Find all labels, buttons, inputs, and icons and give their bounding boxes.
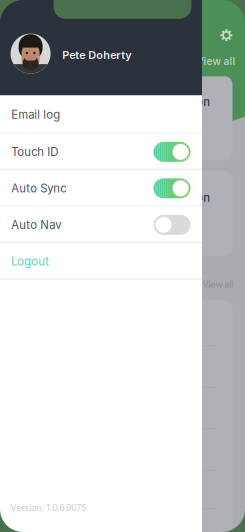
- staticText: Location: [163, 95, 210, 109]
- button[interactable]: Logout: [0, 243, 202, 280]
- staticText: View all: [202, 279, 233, 290]
- staticText: Logout: [11, 254, 49, 268]
- staticText: Touch ID: [11, 145, 58, 159]
- button[interactable]: Settings: [215, 24, 237, 46]
- staticText: Auto Nav: [11, 218, 61, 232]
- staticText: Pete Doherty: [62, 48, 131, 62]
- button[interactable]: Touch ID: [0, 134, 202, 170]
- button[interactable]: Pete Doherty: [0, 0, 202, 95]
- button[interactable]: View all: [0, 279, 233, 290]
- staticText: Location: [163, 191, 210, 204]
- button[interactable]: View all: [0, 55, 235, 67]
- button[interactable]: Email log: [0, 95, 202, 134]
- button[interactable]: Auto Nav: [0, 207, 202, 243]
- staticText: Email log: [11, 108, 60, 121]
- button[interactable]: Auto Sync: [0, 170, 202, 207]
- staticText: Auto Sync: [11, 181, 66, 195]
- staticText: Version: 1.0.6.9075: [10, 502, 86, 513]
- staticText: View all: [196, 55, 235, 67]
